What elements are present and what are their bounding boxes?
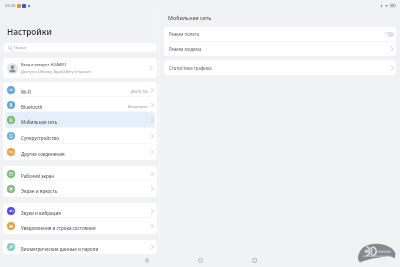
staticText: Bluetooth <box>21 104 128 110</box>
button[interactable]: Вход в аккаунт HUAWEI <box>3 58 157 78</box>
staticText: Вход в аккаунт HUAWEI <box>21 62 66 67</box>
button[interactable]: Биометрические данные и пароли <box>3 240 157 254</box>
staticText: Поиск <box>14 45 27 51</box>
staticText: Режим модема <box>169 46 391 52</box>
button[interactable]: Home <box>173 254 227 267</box>
staticText: Суперустройство <box>21 135 151 141</box>
staticText: Включено <box>128 104 148 109</box>
button[interactable]: Суперустройство <box>3 128 157 144</box>
button[interactable]: Рабочий экран <box>3 166 157 181</box>
button[interactable]: Другие соединения <box>3 144 157 160</box>
staticText: Статистика трафика <box>169 65 391 71</box>
button[interactable]: Уведомления и строка состояния <box>3 218 157 234</box>
staticText: Wi-Fi <box>21 89 131 95</box>
staticText: Мобильная сеть <box>21 119 151 125</box>
button[interactable]: Поиск <box>3 43 157 52</box>
staticText: Мобильная сеть <box>168 14 212 21</box>
staticText: Биометрические данные и пароли <box>21 246 151 252</box>
button[interactable]: Режим полета <box>164 27 396 41</box>
staticText: ASUS_5G <box>131 89 148 94</box>
button[interactable]: Мобильная сеть <box>3 112 157 128</box>
staticText: Другие соединения <box>21 151 151 157</box>
staticText: Доступ к Облаку, AppGallery и прочее <box>21 69 92 74</box>
button[interactable]: Режим модема <box>164 42 396 56</box>
staticText: Настройки <box>7 26 52 37</box>
button[interactable]: Статистика трафика <box>164 60 396 75</box>
staticText: 20:26 <box>5 3 16 9</box>
staticText: Экран и яркость <box>21 188 151 194</box>
button[interactable]: Bluetooth <box>3 97 157 112</box>
button[interactable]: Звуки и вибрация <box>3 203 157 218</box>
staticText: Рабочий экран <box>21 173 151 179</box>
staticText: Звуки и вибрация <box>21 210 151 216</box>
button[interactable]: Wi-Fi <box>3 82 157 97</box>
staticText: Уведомления и строка состояния <box>21 225 151 231</box>
button[interactable]: Recents <box>227 254 281 267</box>
staticText: Режим полета <box>169 31 384 37</box>
button[interactable]: Back <box>119 254 173 267</box>
button[interactable]: Экран и яркость <box>3 181 157 197</box>
